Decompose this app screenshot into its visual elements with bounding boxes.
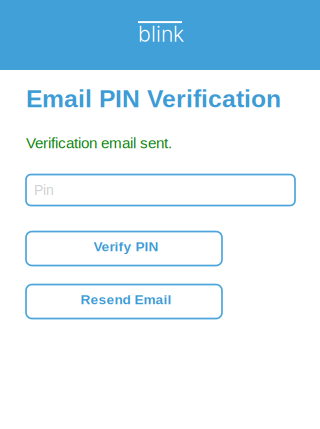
staticText: Verification email sent.: [26, 135, 172, 152]
staticText: blink: [138, 21, 184, 47]
staticText: Resend Email: [80, 292, 171, 307]
staticText: Pin: [34, 182, 54, 198]
staticText: Email PIN Verification: [26, 85, 281, 113]
button[interactable]: Resend Email: [26, 284, 222, 318]
button[interactable]: Verify PIN: [26, 231, 222, 265]
staticText: Verify PIN: [93, 239, 158, 254]
